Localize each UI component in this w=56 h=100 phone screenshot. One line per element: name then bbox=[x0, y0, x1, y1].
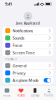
button[interactable] bbox=[3, 69, 53, 77]
button[interactable]: Home bbox=[0, 86, 14, 100]
button[interactable] bbox=[3, 77, 53, 84]
staticText: Privacy bbox=[12, 70, 25, 76]
staticText: Sounds bbox=[12, 35, 24, 41]
staticText: General bbox=[12, 63, 26, 68]
button[interactable] bbox=[3, 62, 53, 69]
button[interactable] bbox=[3, 49, 53, 56]
staticText: Focus bbox=[12, 43, 22, 48]
staticText: Notifications bbox=[12, 28, 33, 33]
staticText: Jane Appleseed bbox=[16, 22, 40, 25]
staticText: Library bbox=[31, 94, 39, 97]
button[interactable]: Library bbox=[28, 86, 42, 100]
button[interactable]: Profile bbox=[42, 86, 56, 100]
staticText: Profile bbox=[44, 94, 54, 97]
staticText: Home bbox=[3, 94, 11, 97]
staticText: Airplane Mode bbox=[12, 78, 38, 83]
staticText: PRIVACY bbox=[5, 57, 17, 61]
staticText: Screen Time bbox=[12, 50, 34, 55]
button[interactable]: Health bbox=[14, 86, 28, 100]
staticText: 9:41 bbox=[5, 1, 12, 7]
button[interactable] bbox=[3, 34, 53, 42]
staticText: Health bbox=[16, 94, 25, 97]
button[interactable] bbox=[3, 27, 53, 34]
button[interactable] bbox=[3, 42, 53, 49]
